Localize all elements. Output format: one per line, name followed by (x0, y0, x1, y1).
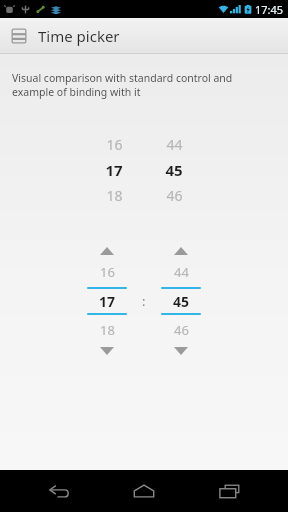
button[interactable]: Increment Hours (87, 241, 127, 261)
staticText: 16 (100, 263, 115, 281)
button[interactable]: 17 (87, 289, 127, 313)
button[interactable]: Home (117, 470, 171, 512)
staticText: 46 (174, 321, 189, 339)
button[interactable]: Increment Minutes (161, 241, 201, 261)
staticText: 44 (166, 135, 183, 154)
button[interactable]: Time picker (0, 18, 288, 54)
staticText: 18 (106, 186, 123, 205)
button[interactable]: Decrement Hours (87, 341, 127, 361)
staticText: 17 (105, 160, 123, 180)
staticText: 18 (100, 321, 115, 339)
button[interactable]: Recent apps (203, 470, 257, 512)
button[interactable]: 45 (161, 289, 201, 313)
staticText: 44 (174, 263, 189, 281)
staticText: : (142, 292, 146, 310)
staticText: 45 (165, 160, 183, 180)
button[interactable]: Back (32, 470, 86, 512)
button[interactable]: Decrement Minutes (161, 341, 201, 361)
staticText: Time picker (38, 26, 120, 46)
staticText: 46 (166, 186, 183, 205)
staticText: 45 (173, 292, 190, 311)
staticText: 16 (106, 135, 123, 154)
staticText: Visual comparison with standard control … (12, 71, 233, 99)
staticText: 17:45 (255, 2, 284, 17)
staticText: 17 (99, 292, 116, 311)
